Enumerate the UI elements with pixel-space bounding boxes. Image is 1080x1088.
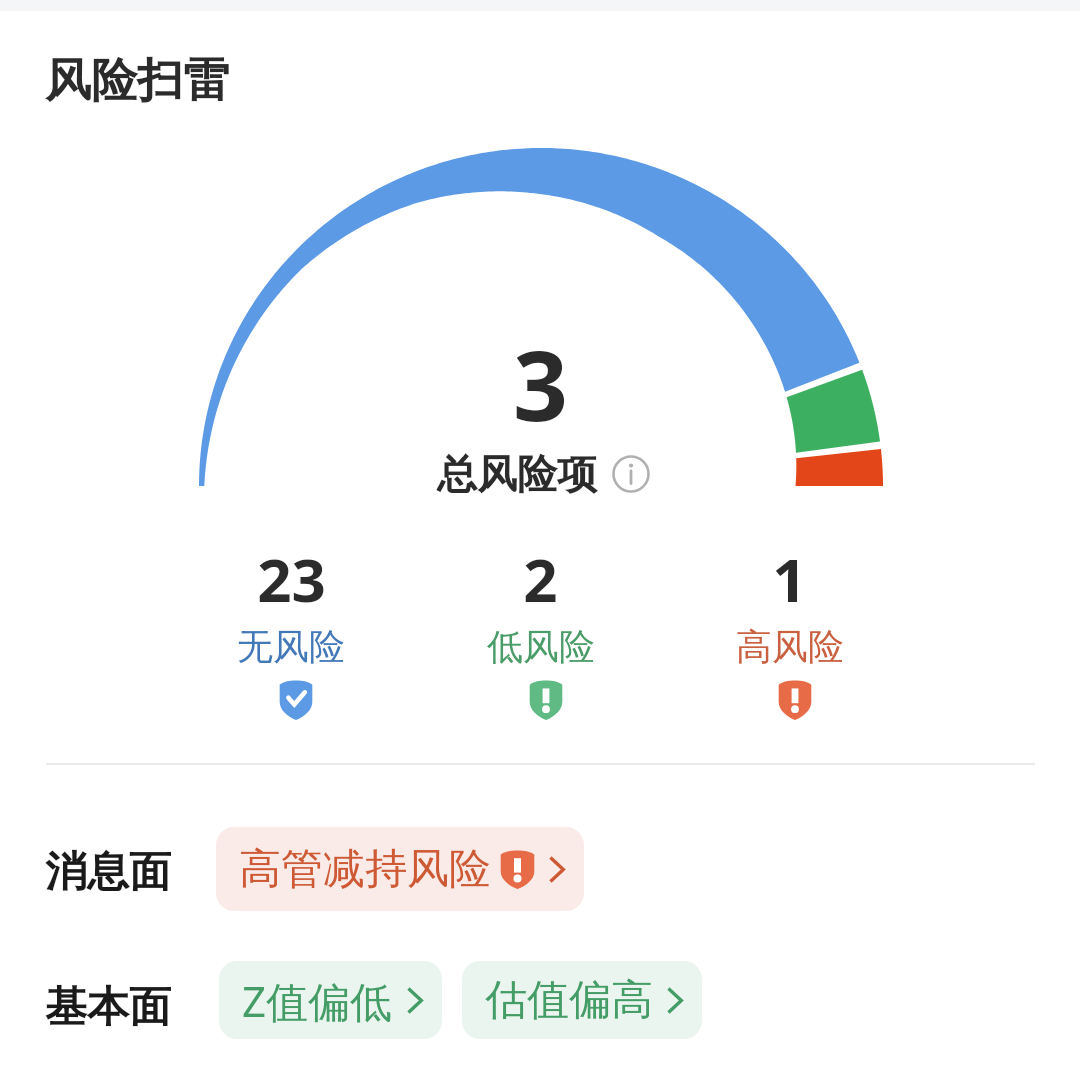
button[interactable]: Z值偏低 [219, 961, 442, 1039]
staticText: Z值偏低 [242, 972, 393, 1029]
staticText: 23 [257, 538, 326, 620]
staticText: 高管减持风险 [239, 843, 491, 896]
staticText: 3 [513, 318, 568, 449]
button[interactable]: 23 [166, 538, 416, 720]
staticText: 总风险项 [437, 449, 597, 499]
staticText: 估值偏高 [485, 974, 653, 1027]
button[interactable]: 估值偏高 [462, 961, 702, 1039]
staticText: 2 [523, 538, 558, 620]
button[interactable]: 1 [665, 538, 914, 720]
staticText: 基本面 [45, 981, 171, 1034]
staticText: 风险扫雷 [45, 52, 229, 110]
button[interactable]: Info about total risk items [613, 456, 649, 492]
staticText: 高风险 [736, 624, 844, 669]
staticText: 消息面 [45, 846, 171, 899]
staticText: 低风险 [487, 624, 595, 669]
staticText: 1 [772, 538, 807, 620]
button[interactable]: 2 [416, 538, 665, 720]
staticText: 无风险 [237, 624, 345, 669]
button[interactable]: 高管减持风险 [216, 827, 584, 911]
